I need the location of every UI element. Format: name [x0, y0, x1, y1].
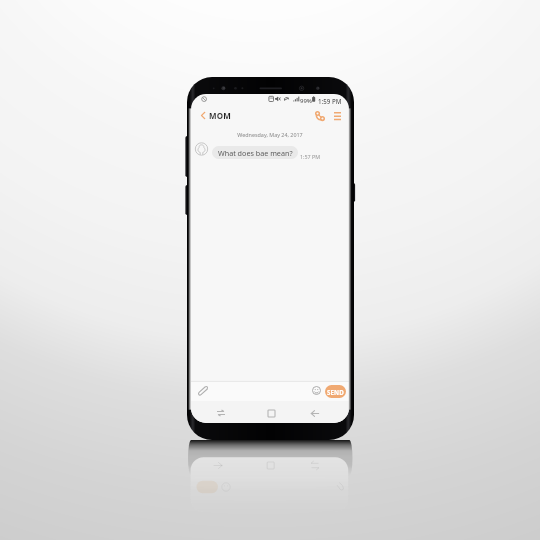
button[interactable]: Menu [330, 109, 344, 123]
button[interactable]: What does bae mean? [212, 146, 298, 159]
staticText: 1:57 PM [300, 153, 321, 160]
staticText: 1:59 PM [318, 97, 342, 105]
button[interactable]: SEND [325, 385, 346, 398]
staticText: MOM [209, 110, 231, 121]
staticText: SEND [327, 388, 344, 396]
staticText: What does bae mean? [218, 148, 293, 158]
button[interactable]: Attach file [196, 384, 209, 397]
button[interactable]: Recent apps [212, 404, 230, 422]
button[interactable]: Back [306, 404, 324, 422]
button[interactable]: Back [197, 107, 208, 123]
staticText: 99% [300, 97, 312, 105]
staticText: Wednesday, May 24, 2017 [191, 131, 349, 138]
button[interactable]: Emoji [310, 384, 322, 396]
button[interactable]: Call [313, 109, 327, 123]
button[interactable]: Home [262, 404, 280, 422]
